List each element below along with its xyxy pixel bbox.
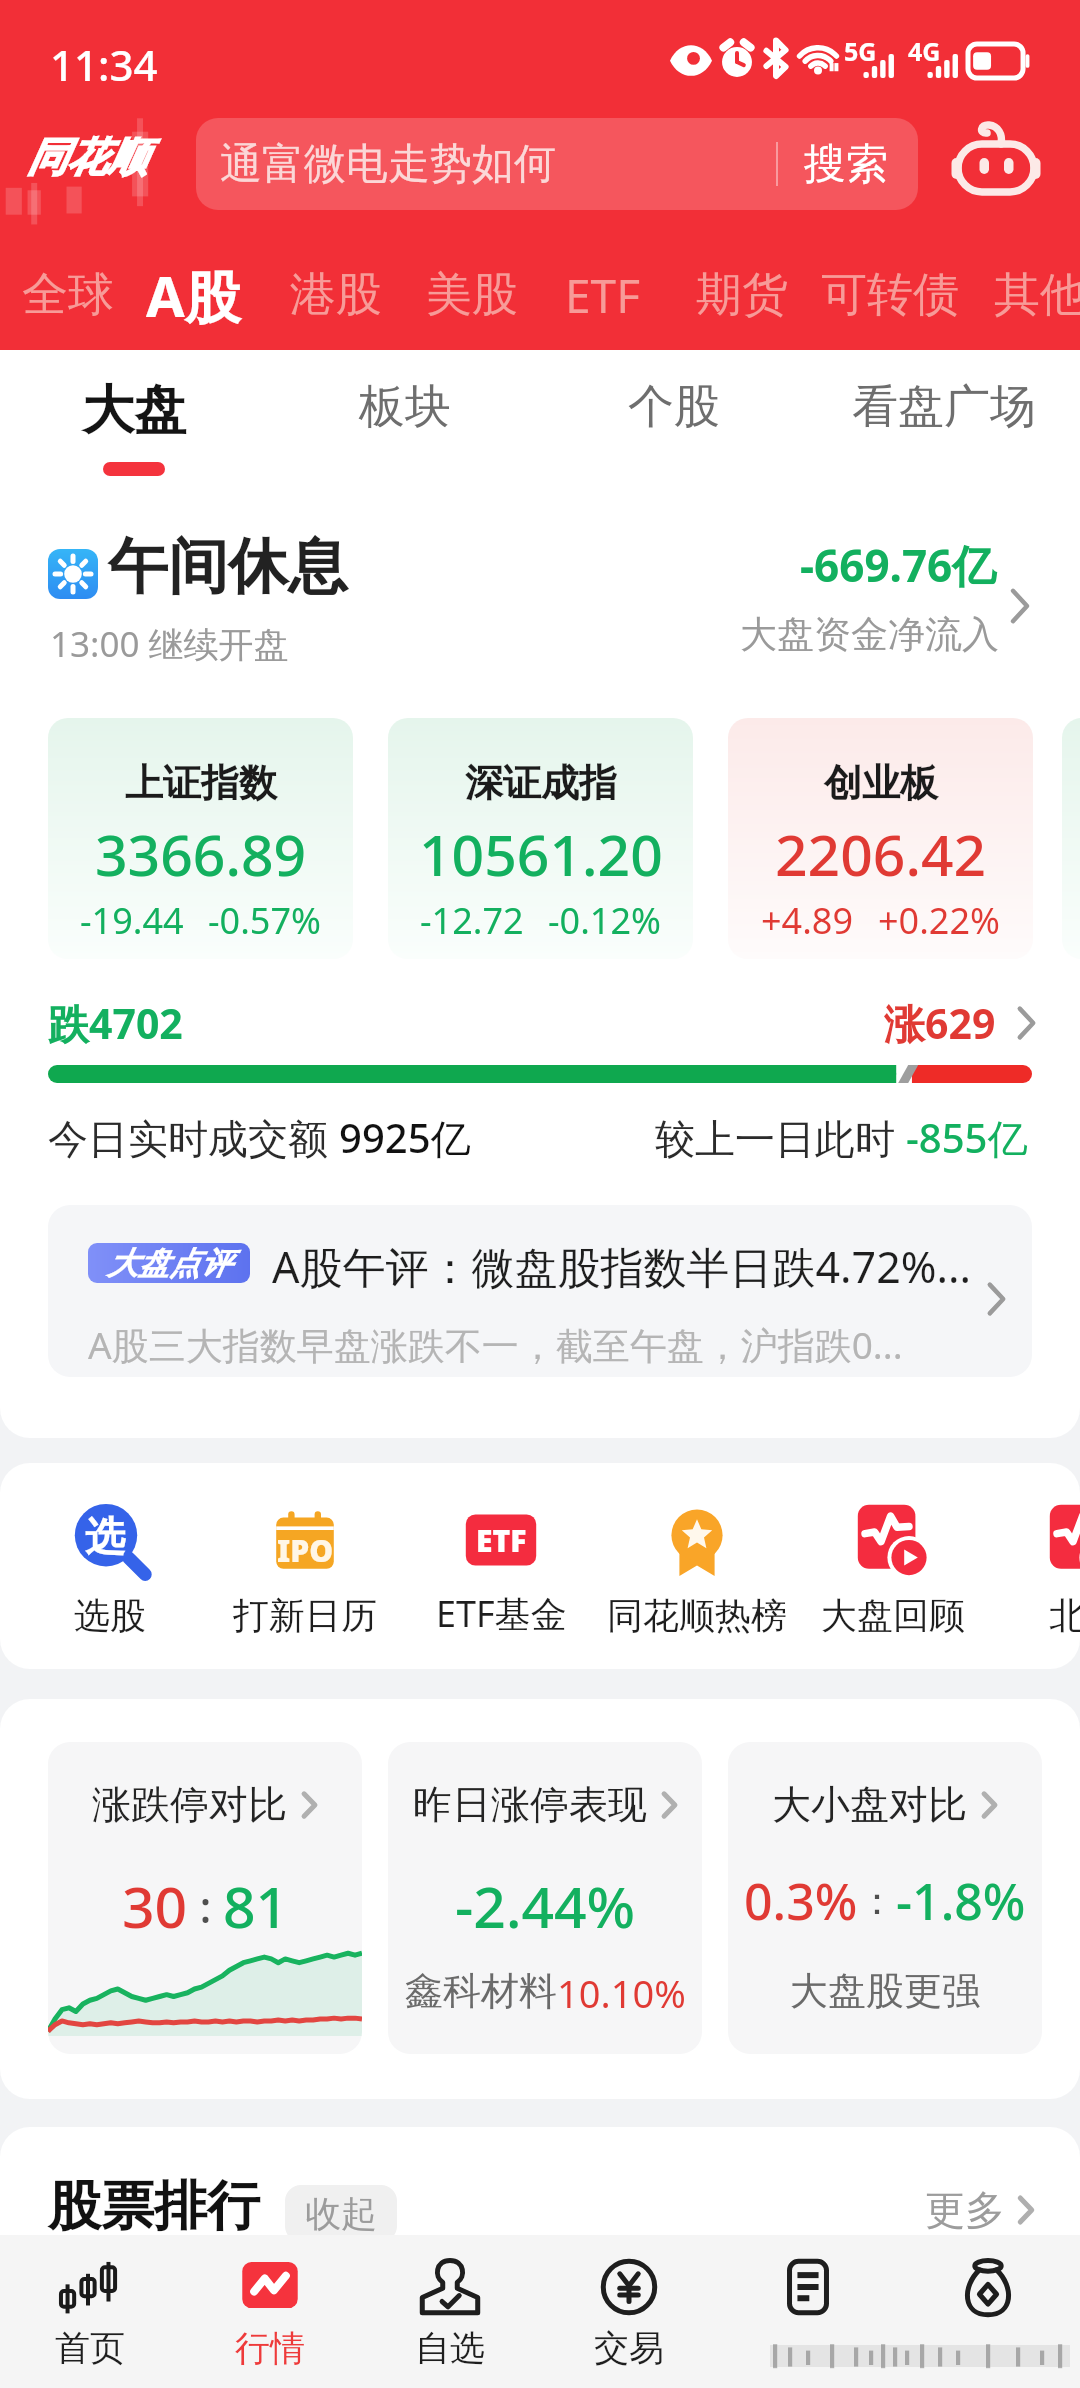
button[interactable]: 交易 <box>539 2235 719 2388</box>
staticText: ： <box>858 1877 896 1925</box>
staticText: -12.72 <box>420 896 524 945</box>
staticText: 同花顺 <box>27 132 147 182</box>
staticText: 全球 <box>22 266 114 324</box>
staticText: ETF <box>565 264 641 327</box>
staticText: 3366.89 <box>95 815 307 893</box>
staticText: 选股 <box>74 1593 146 1638</box>
button[interactable]: 其他 <box>994 266 1080 324</box>
button[interactable]: 涨跌停对比 <box>48 1742 362 2054</box>
staticText: 5G <box>844 34 877 68</box>
staticText: 大盘 <box>82 378 186 444</box>
button[interactable]: A股 <box>146 257 241 333</box>
staticText: 11:34 <box>50 36 158 93</box>
button[interactable]: tab 4 <box>718 2235 898 2388</box>
staticText: -1.8% <box>896 1867 1026 1935</box>
staticText: 涨跌停对比 <box>92 1780 287 1829</box>
staticText: 行情 <box>235 2326 305 2370</box>
staticText: 可转债 <box>821 266 959 324</box>
button[interactable]: IPO <box>209 1500 401 1638</box>
staticText: ETF <box>476 1520 527 1561</box>
staticText: 搜索 <box>804 138 888 191</box>
staticText: 30 <box>122 1867 188 1945</box>
button[interactable]: 选 <box>14 1500 206 1638</box>
button[interactable]: tab 5 <box>898 2235 1078 2388</box>
staticText: 10.10% <box>557 1967 686 2019</box>
button[interactable]: 大盘点评 <box>48 1205 1032 1377</box>
button[interactable]: 期货 <box>696 266 788 324</box>
staticText: 81 <box>223 1867 289 1945</box>
staticText: : <box>188 1876 223 1936</box>
button[interactable]: 涨629 <box>884 995 1037 1051</box>
button[interactable]: ETF <box>405 1500 597 1638</box>
button[interactable]: 午间休息 <box>0 485 1080 695</box>
button[interactable]: 创业板 <box>728 718 1033 959</box>
button[interactable]: 深证成指 <box>388 718 693 959</box>
staticText: 期货 <box>696 266 788 324</box>
staticText: 股票排行 <box>48 2173 260 2240</box>
button[interactable]: 大小盘对比 <box>728 1742 1042 2054</box>
staticText: 看盘广场 <box>852 378 1036 436</box>
staticText: 昨日涨停表现 <box>413 1780 647 1829</box>
staticText: 午间休息 <box>108 529 348 605</box>
staticText: 自选 <box>415 2326 485 2370</box>
staticText: -669.76亿 <box>800 535 997 595</box>
staticText: 港股 <box>290 266 382 324</box>
staticText: IPO <box>277 1530 334 1571</box>
button[interactable]: 个股 <box>628 378 720 436</box>
staticText: 上证指数 <box>125 759 277 807</box>
staticText: 今日实时成交额 <box>48 1110 339 1165</box>
button[interactable]: 大盘回顾 <box>797 1500 989 1638</box>
button[interactable]: 北证50 <box>1062 718 1080 959</box>
staticText: 其他 <box>994 266 1080 324</box>
button[interactable]: 通富微电走势如何 <box>196 118 918 210</box>
button[interactable]: 可转债 <box>821 266 959 324</box>
button[interactable]: 自选 <box>360 2235 540 2388</box>
button[interactable]: 行情 <box>180 2235 360 2388</box>
staticText: 10561.20 <box>419 815 663 893</box>
staticText: 同花顺热榜 <box>607 1593 787 1638</box>
button[interactable]: AI assistant <box>946 114 1046 214</box>
button[interactable]: 北交 <box>989 1500 1080 1638</box>
staticText: 鑫科材料 <box>405 1967 557 2015</box>
button[interactable]: 看盘广场 <box>852 378 1036 436</box>
staticText: -0.12% <box>548 896 661 945</box>
button[interactable]: 上证指数 <box>48 718 353 959</box>
staticText: 板块 <box>359 378 451 436</box>
staticText: -2.44% <box>455 1867 636 1945</box>
staticText: 深证成指 <box>465 759 617 807</box>
staticText: 更多 <box>925 2185 1005 2235</box>
button[interactable]: 昨日涨停表现 <box>388 1742 702 2054</box>
button[interactable]: 同花顺热榜 <box>601 1500 793 1638</box>
staticText: A股三大指数早盘涨跌不一，截至午盘，沪指跌0... <box>88 1319 903 1370</box>
button[interactable]: 美股 <box>426 266 518 324</box>
button[interactable]: ETF <box>565 264 641 327</box>
staticText: 交易 <box>594 2326 664 2370</box>
button[interactable]: 更多 <box>925 2185 1035 2235</box>
staticText: 较上一日此时 <box>655 1110 906 1165</box>
staticText: ETF基金 <box>436 1589 567 1638</box>
button[interactable]: 大盘 <box>82 378 186 476</box>
staticText: 大盘资金净流入 <box>740 611 999 658</box>
staticText: +4.89 <box>761 896 854 945</box>
staticText: 选 <box>85 1511 125 1561</box>
staticText: 创业板 <box>824 759 938 807</box>
staticText: 涨629 <box>884 995 996 1051</box>
staticText: -0.57% <box>208 896 321 945</box>
staticText: 个股 <box>628 378 720 436</box>
button[interactable]: 全球 <box>22 266 114 324</box>
button[interactable]: 板块 <box>359 378 451 436</box>
staticText: -19.44 <box>80 896 184 945</box>
button[interactable]: 港股 <box>290 266 382 324</box>
staticText: +0.22% <box>878 896 1000 945</box>
staticText: 通富微电走势如何 <box>220 138 556 191</box>
button[interactable]: 首页 <box>0 2235 180 2388</box>
staticText: 首页 <box>55 2326 125 2370</box>
staticText: 大盘股更强 <box>790 1967 980 2015</box>
button[interactable]: 收起 <box>285 2185 397 2242</box>
staticText: 跌4702 <box>48 995 183 1051</box>
staticText: 大盘回顾 <box>821 1593 965 1638</box>
staticText: 9925亿 <box>339 1110 471 1165</box>
staticText: 打新日历 <box>233 1593 377 1638</box>
staticText: -855亿 <box>906 1110 1028 1165</box>
staticText: 0.3% <box>744 1867 858 1935</box>
